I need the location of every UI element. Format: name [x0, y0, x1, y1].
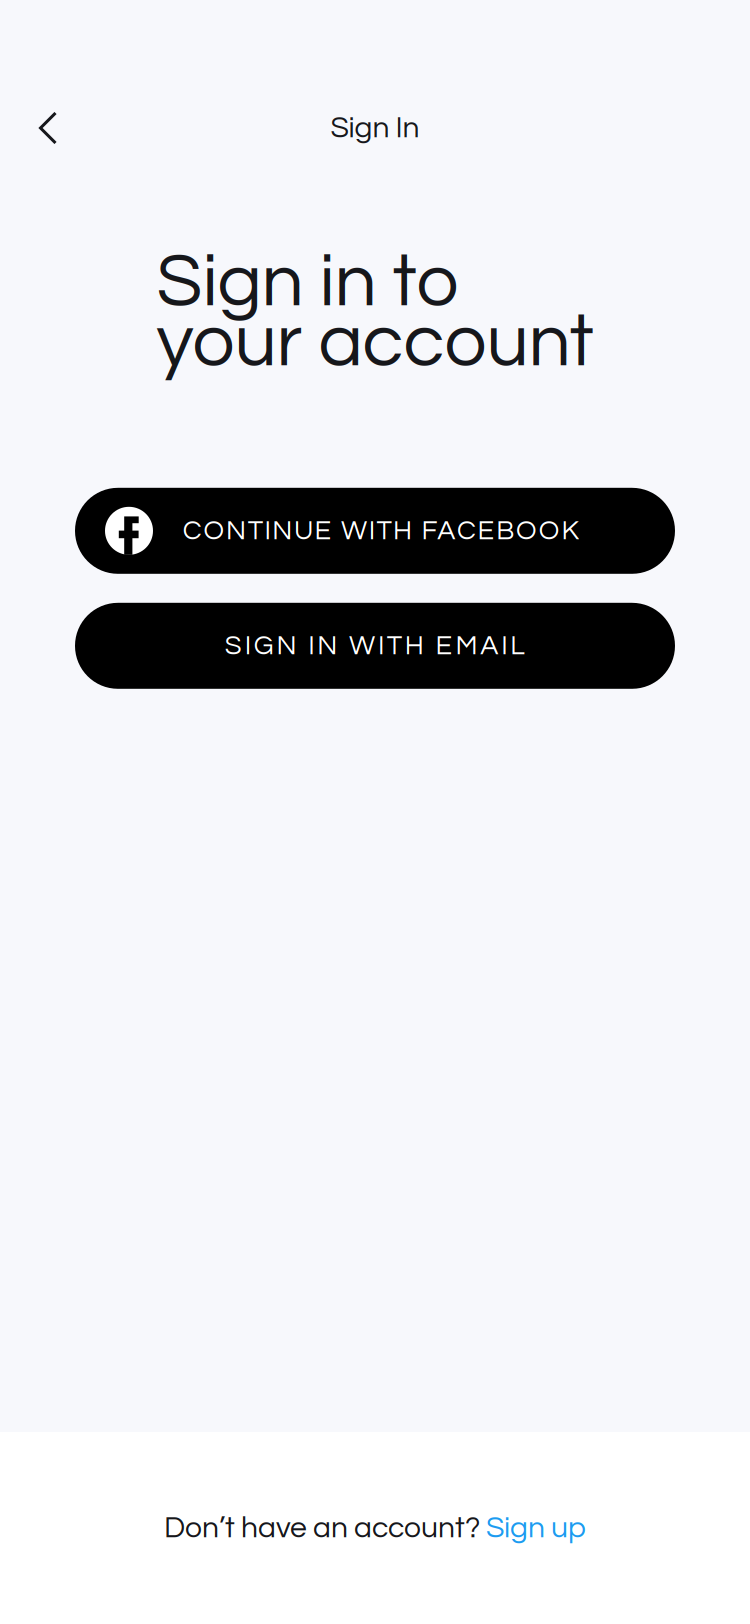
staticText: Don’t have an account? [164, 1513, 486, 1543]
button[interactable]: Back [20, 100, 76, 156]
button[interactable]: SIGN IN WITH EMAIL [75, 603, 675, 689]
staticText: Sign in to your account [156, 244, 593, 381]
staticText: Sign In [330, 113, 419, 143]
button[interactable]: Sign up [486, 1513, 586, 1543]
staticText: Sign up [486, 1513, 586, 1543]
button[interactable]: CONTINUE WITH FACEBOOK [75, 488, 675, 574]
staticText: CONTINUE WITH FACEBOOK [175, 517, 587, 545]
staticText: SIGN IN WITH EMAIL [216, 632, 534, 660]
